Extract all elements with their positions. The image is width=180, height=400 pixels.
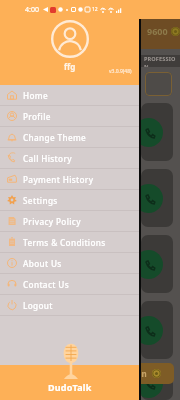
- button[interactable]: Profile: [0, 106, 139, 126]
- button[interactable]: [141, 235, 173, 293]
- button[interactable]: Change Theme: [0, 127, 139, 147]
- staticText: 4:00: [25, 5, 39, 15]
- button[interactable]: [141, 301, 173, 359]
- button[interactable]: [141, 169, 173, 227]
- staticText: 9600: [147, 25, 168, 37]
- button[interactable]: Settings: [0, 190, 139, 210]
- staticText: About Us: [23, 258, 62, 269]
- staticText: 12: [92, 6, 98, 13]
- staticText: PROFESSION: [144, 55, 180, 67]
- button[interactable]: [141, 103, 173, 161]
- staticText: Profile: [23, 111, 51, 122]
- staticText: Coin: [129, 368, 147, 379]
- button[interactable]: Contact Us: [0, 274, 139, 294]
- staticText: Settings: [23, 195, 58, 206]
- staticText: Home: [23, 90, 48, 101]
- button[interactable]: Privacy Policy: [0, 211, 139, 231]
- button[interactable]: Home: [0, 85, 139, 105]
- staticText: DudoTalk: [48, 381, 92, 393]
- staticText: Terms & Conditions: [23, 237, 106, 248]
- staticText: Logout: [23, 300, 53, 311]
- button[interactable]: Payment History: [0, 169, 139, 189]
- staticText: Privacy Policy: [23, 216, 81, 227]
- button[interactable]: Logout: [0, 295, 139, 315]
- staticText: Payment History: [23, 174, 94, 185]
- staticText: ffg: [64, 61, 76, 72]
- button[interactable]: About Us: [0, 253, 139, 273]
- staticText: v3.0.9(48): [109, 68, 132, 75]
- button[interactable]: Terms & Conditions: [0, 232, 139, 252]
- button[interactable]: [141, 367, 173, 400]
- staticText: Contact Us: [23, 279, 69, 290]
- button[interactable]: Coin: [116, 363, 174, 384]
- staticText: Change Theme: [23, 132, 87, 143]
- staticText: Call History: [23, 153, 72, 164]
- button[interactable]: Call History: [0, 148, 139, 168]
